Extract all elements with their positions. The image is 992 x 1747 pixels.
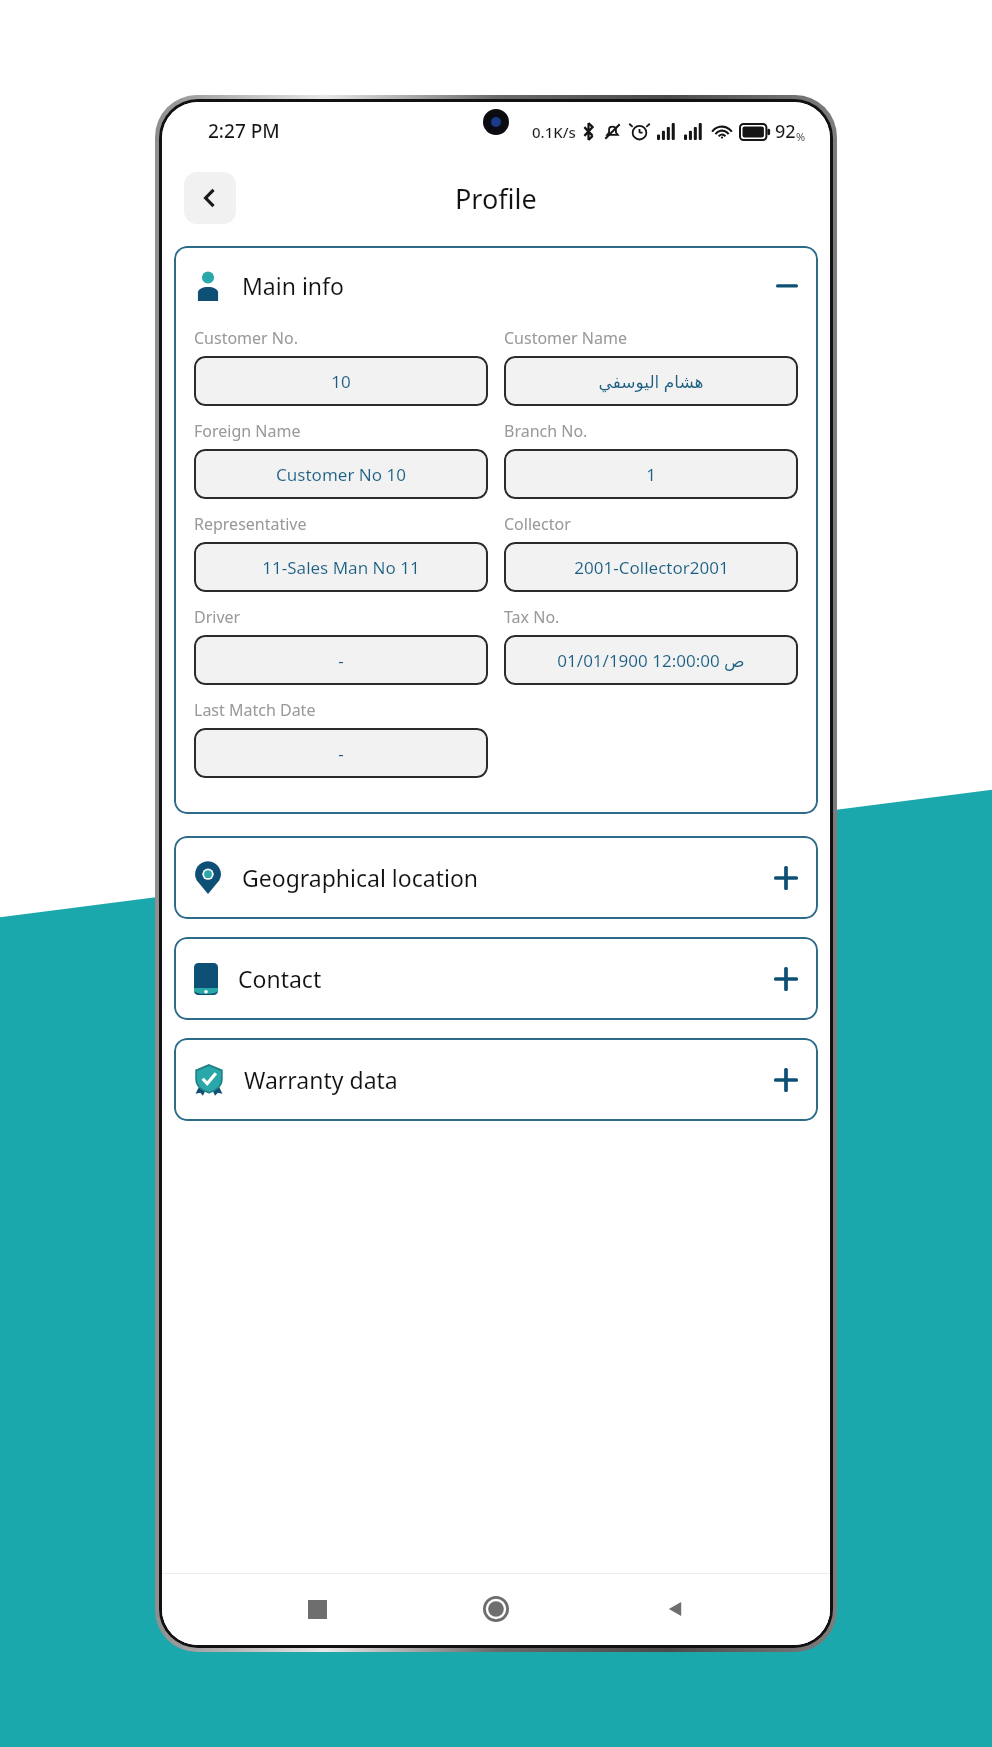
staticText: Branch No. xyxy=(504,420,588,442)
staticText: Foreign Name xyxy=(194,420,301,442)
staticText: Collector xyxy=(504,513,571,535)
staticText: Main info xyxy=(242,270,344,301)
button[interactable]: 1 xyxy=(504,449,798,499)
button[interactable]: - xyxy=(194,728,488,778)
staticText: 10 xyxy=(331,370,351,393)
button[interactable]: Back xyxy=(184,172,236,224)
staticText: Warranty data xyxy=(244,1064,398,1095)
button[interactable]: 10 xyxy=(194,356,488,406)
button[interactable]: Contact xyxy=(174,937,818,1020)
staticText: 92 xyxy=(775,119,796,144)
button[interactable]: 2001-Collector2001 xyxy=(504,542,798,592)
button[interactable]: Customer No 10 xyxy=(194,449,488,499)
staticText: Profile xyxy=(455,180,537,217)
staticText: Last Match Date xyxy=(194,699,316,721)
staticText: Representative xyxy=(194,513,307,535)
staticText: 2001-Collector2001 xyxy=(574,556,729,579)
button[interactable]: Main info xyxy=(194,264,798,307)
staticText: 2:27 PM xyxy=(208,118,280,144)
button[interactable]: Back xyxy=(651,1585,699,1633)
button[interactable]: 11-Sales Man No 11 xyxy=(194,542,488,592)
button[interactable]: هشام اليوسفي xyxy=(504,356,798,406)
staticText: Geographical location xyxy=(242,862,479,893)
staticText: Contact xyxy=(238,963,322,994)
staticText: - xyxy=(338,742,344,765)
staticText: هشام اليوسفي xyxy=(598,370,704,393)
staticText: Customer Name xyxy=(504,327,627,349)
button[interactable]: Home xyxy=(472,1585,520,1633)
button[interactable]: Geographical location xyxy=(174,836,818,919)
staticText: Tax No. xyxy=(504,606,560,628)
button[interactable]: ص 12:00:00 01/01/1900 xyxy=(504,635,798,685)
button[interactable]: - xyxy=(194,635,488,685)
staticText: % xyxy=(796,129,806,144)
staticText: 11-Sales Man No 11 xyxy=(262,556,420,579)
staticText: - xyxy=(338,649,344,672)
staticText: ص 12:00:00 01/01/1900 xyxy=(557,649,745,672)
button[interactable]: Recents xyxy=(293,1585,341,1633)
staticText: 0.1K/s xyxy=(532,122,576,142)
staticText: 1 xyxy=(646,463,656,486)
staticText: Customer No. xyxy=(194,327,299,349)
staticText: Customer No 10 xyxy=(276,463,406,486)
staticText: Driver xyxy=(194,606,241,628)
button[interactable]: Warranty data xyxy=(174,1038,818,1121)
